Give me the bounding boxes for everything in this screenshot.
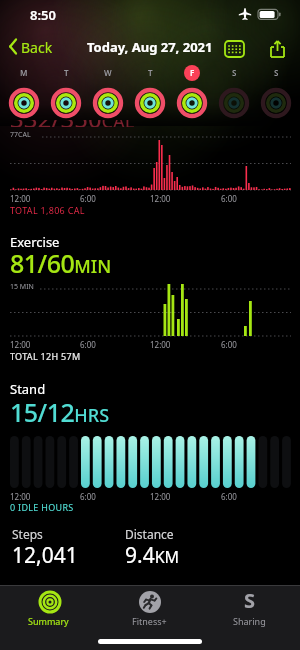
staticText: 6:00	[80, 193, 96, 204]
staticText: 6:00	[221, 193, 237, 204]
button[interactable]: Back	[6, 36, 58, 58]
staticText: TOTAL 12H 57M	[10, 350, 81, 362]
button[interactable]: S	[213, 64, 255, 122]
staticText: 12,041	[12, 541, 78, 570]
staticText: 6:00	[221, 491, 237, 502]
staticText: 9.4KM	[125, 541, 180, 570]
button[interactable]: T	[45, 64, 87, 122]
staticText: 12:00	[150, 491, 171, 502]
staticText: 12:00	[150, 339, 171, 350]
staticText: 6:00	[80, 339, 96, 350]
button[interactable]: W	[87, 64, 129, 122]
staticText: S	[274, 67, 279, 78]
staticText: 6:00	[80, 491, 96, 502]
staticText: 12:00	[10, 193, 31, 204]
staticText: 8:50	[30, 6, 56, 24]
staticText: Steps	[12, 526, 43, 542]
staticText: S	[244, 587, 256, 614]
staticText: Stand	[10, 380, 46, 398]
button[interactable]: Summary	[0, 585, 100, 635]
staticText: 6:00	[221, 339, 237, 350]
staticText: 12:00	[10, 491, 31, 502]
staticText: 77CAL	[10, 130, 31, 140]
staticText: Today, Aug 27, 2021	[87, 38, 213, 56]
staticText: 15/12HRS	[10, 395, 110, 429]
button[interactable]: T	[129, 64, 171, 122]
button[interactable]: M	[3, 64, 45, 122]
staticText: Distance	[125, 526, 174, 542]
staticText: Fitness+	[132, 615, 167, 627]
button[interactable]	[269, 40, 289, 60]
staticText: 0 IDLE HOURS	[10, 501, 74, 513]
button[interactable]	[224, 40, 248, 60]
staticText: T	[64, 67, 69, 78]
button[interactable]: S	[255, 64, 297, 122]
staticText: M	[20, 67, 28, 78]
staticText: W	[104, 67, 112, 78]
staticText: 81/60MIN	[10, 246, 112, 280]
staticText: S	[232, 67, 237, 78]
staticText: 12:00	[150, 193, 171, 204]
button[interactable]: F	[171, 64, 213, 122]
staticText: 12:00	[10, 339, 31, 350]
staticText: F	[190, 67, 195, 78]
button[interactable]: S	[200, 585, 300, 635]
staticText: Back	[21, 38, 53, 57]
staticText: Sharing	[233, 615, 266, 627]
button[interactable]: Fitness+	[100, 585, 200, 635]
staticText: Exercise	[10, 233, 60, 251]
staticText: TOTAL 1,806 CAL	[10, 204, 85, 216]
staticText: 15 MIN	[10, 282, 34, 292]
staticText: T	[148, 67, 153, 78]
staticText: Summary	[28, 615, 69, 627]
